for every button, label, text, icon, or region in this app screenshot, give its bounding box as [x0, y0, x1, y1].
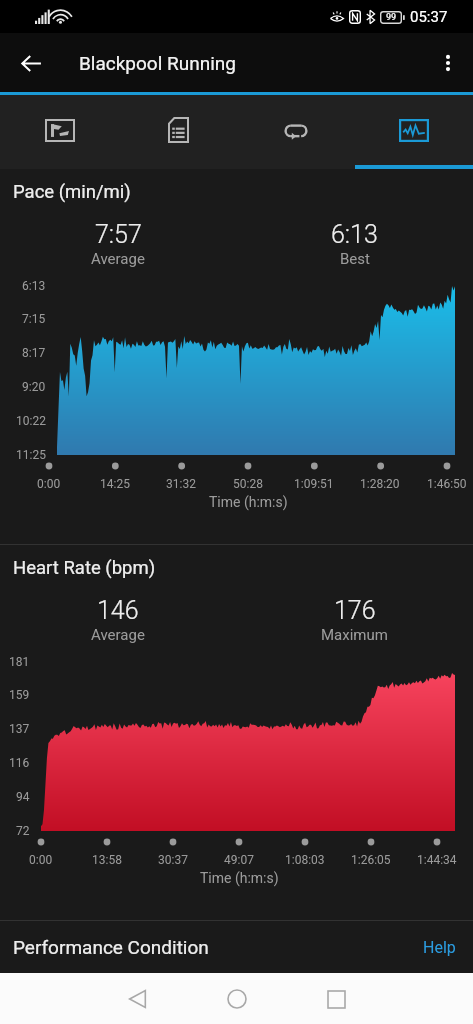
button[interactable]: Recents	[312, 975, 360, 1023]
staticText: 6:13	[331, 220, 378, 249]
staticText: 30:37	[158, 853, 188, 867]
staticText: 94	[16, 790, 30, 804]
staticText: Performance Condition	[13, 936, 209, 958]
staticText: 1:28:20	[360, 477, 400, 491]
staticText: 137	[9, 722, 30, 736]
staticText: 49:07	[224, 853, 254, 867]
staticText: 176	[334, 596, 376, 625]
staticText: 1:44:34	[417, 853, 457, 867]
staticText: 146	[97, 596, 139, 625]
staticText: Blackpool Running	[79, 52, 236, 74]
staticText: 05:37	[410, 8, 448, 26]
staticText: 1:46:50	[427, 477, 467, 491]
staticText: 10:22	[16, 414, 46, 428]
staticText: 9:20	[22, 380, 46, 394]
staticText: Best	[340, 250, 370, 268]
button[interactable]: Details	[119, 95, 237, 165]
staticText: Time (h:m:s)	[209, 494, 288, 510]
button[interactable]: Back	[9, 41, 53, 85]
staticText: 116	[9, 756, 30, 770]
staticText: Average	[91, 626, 145, 644]
staticText: Time (h:m:s)	[200, 870, 279, 886]
staticText: 7:57	[95, 220, 142, 249]
staticText: 99	[386, 12, 397, 23]
staticText: Help	[423, 938, 456, 957]
button[interactable]: Charts	[355, 95, 473, 165]
staticText: Maximum	[321, 626, 388, 644]
staticText: 1:09:51	[294, 477, 334, 491]
button[interactable]: Back	[113, 975, 161, 1023]
staticText: 1:26:05	[351, 853, 391, 867]
staticText: 0:00	[37, 477, 61, 491]
staticText: Pace (min/mi)	[13, 181, 131, 203]
button[interactable]: Laps	[237, 95, 355, 165]
staticText: 181	[9, 655, 30, 669]
staticText: 0:00	[29, 853, 53, 867]
staticText: Average	[91, 250, 145, 268]
staticText: 6:13	[22, 279, 46, 293]
staticText: Heart Rate (bpm)	[13, 557, 156, 579]
staticText: 13:58	[92, 853, 122, 867]
staticText: 31:32	[166, 477, 196, 491]
button[interactable]: More options	[426, 41, 470, 85]
button[interactable]: Map	[0, 95, 119, 165]
staticText: 1:08:03	[285, 853, 325, 867]
button[interactable]: Home	[213, 975, 261, 1023]
staticText: 11:25	[16, 448, 46, 462]
staticText: 50:28	[233, 477, 263, 491]
staticText: 7:15	[22, 312, 46, 326]
staticText: 14:25	[100, 477, 130, 491]
button[interactable]: Help	[406, 924, 473, 971]
staticText: 159	[9, 688, 30, 702]
staticText: 72	[16, 824, 30, 838]
staticText: 8:17	[22, 346, 46, 360]
